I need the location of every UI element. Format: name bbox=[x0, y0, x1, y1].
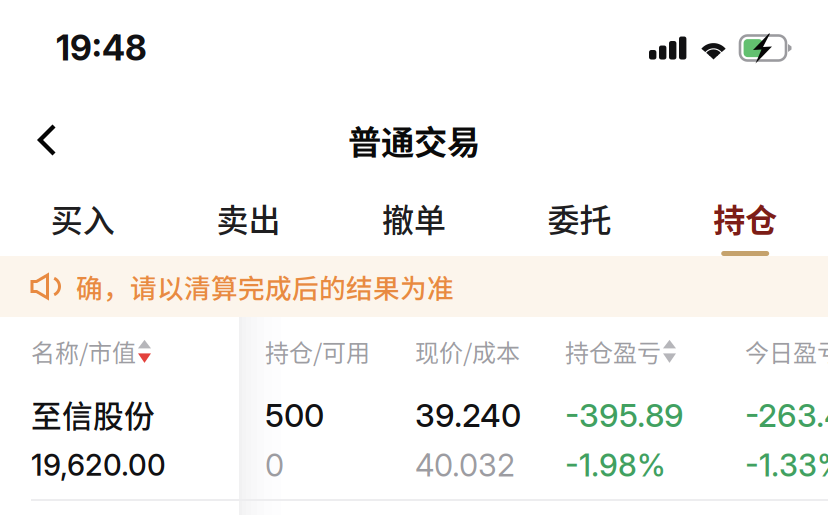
staticText: -1.98% bbox=[565, 447, 666, 484]
button[interactable]: 今日盈亏 bbox=[745, 334, 828, 369]
staticText: 持仓盈亏 bbox=[565, 334, 661, 369]
staticText: 19:48 bbox=[56, 27, 147, 69]
staticText: 确，请以清算完成后的结果为准 bbox=[76, 267, 454, 306]
staticText: 委托 bbox=[548, 195, 612, 241]
staticText: 19,620.00 bbox=[31, 447, 166, 483]
button[interactable]: 名称/市值 bbox=[31, 334, 151, 369]
staticText: 买入 bbox=[51, 195, 115, 241]
staticText: 卖出 bbox=[216, 195, 280, 241]
button[interactable]: 买入 bbox=[0, 184, 166, 256]
button[interactable]: 持仓/可用 bbox=[265, 334, 370, 369]
button[interactable]: 卖出 bbox=[166, 184, 331, 256]
staticText: 500 bbox=[265, 396, 324, 435]
button[interactable]: 撤单 bbox=[331, 184, 497, 256]
staticText: 名称/市值 bbox=[31, 334, 136, 369]
staticText: 39.240 bbox=[415, 396, 521, 435]
staticText: 普通交易 bbox=[348, 116, 480, 164]
staticText: 40.032 bbox=[415, 447, 515, 484]
staticText: 持仓/可用 bbox=[265, 334, 370, 369]
button[interactable]: 持仓 bbox=[662, 184, 828, 256]
staticText: 撤单 bbox=[382, 195, 446, 241]
button[interactable]: 委托 bbox=[497, 184, 662, 256]
button[interactable]: 持仓盈亏 bbox=[565, 334, 676, 369]
button[interactable]: 返回 bbox=[0, 107, 87, 173]
staticText: 现价/成本 bbox=[415, 334, 520, 369]
staticText: 0 bbox=[265, 447, 284, 484]
staticText: 今日盈亏 bbox=[745, 334, 828, 369]
staticText: -395.89 bbox=[565, 396, 684, 435]
staticText: -263.47 bbox=[745, 396, 828, 435]
staticText: 至信股份 bbox=[31, 392, 155, 436]
staticText: 持仓 bbox=[713, 195, 777, 241]
staticText: -1.33% bbox=[745, 447, 828, 484]
button[interactable]: 至信股份 bbox=[0, 380, 828, 499]
button[interactable]: 现价/成本 bbox=[415, 334, 520, 369]
